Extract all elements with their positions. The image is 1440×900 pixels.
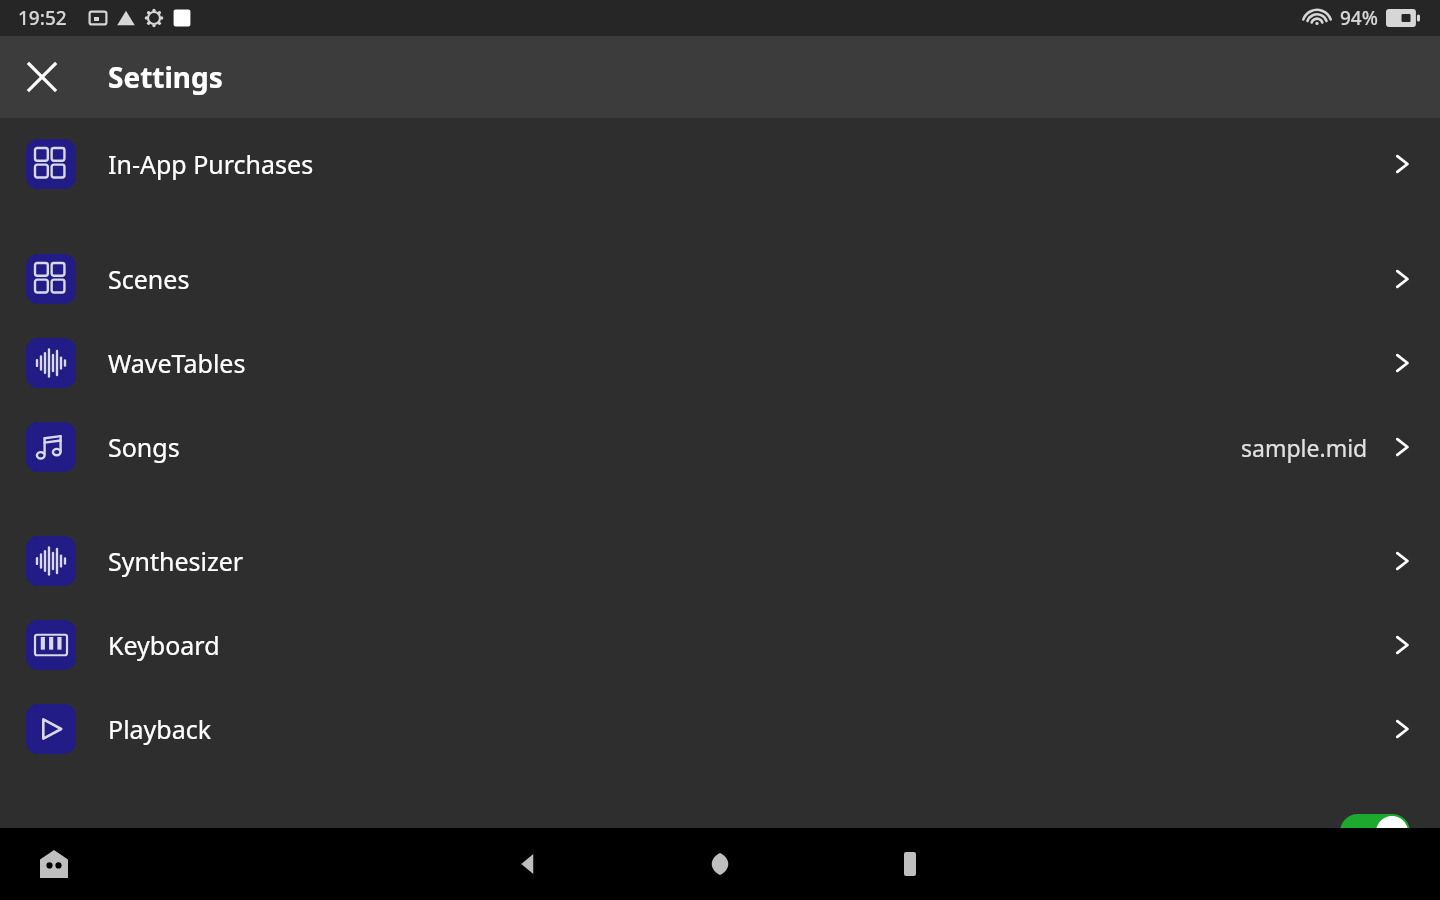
staticText: Playback: [108, 712, 212, 746]
staticText: Settings: [108, 58, 223, 96]
button[interactable]: Close: [12, 47, 72, 107]
button[interactable]: Back: [496, 832, 560, 896]
staticText: sample.mid: [1241, 432, 1368, 463]
button[interactable]: Songs: [0, 405, 1440, 489]
staticText: 19:52: [18, 5, 67, 31]
staticText: In-App Purchases: [108, 147, 314, 181]
staticText: Synthesizer: [108, 544, 244, 578]
staticText: Songs: [108, 430, 180, 464]
button[interactable]: Recent apps: [878, 832, 942, 896]
staticText: 94%: [1340, 5, 1378, 31]
staticText: Scenes: [108, 262, 190, 296]
button[interactable]: WaveTables: [0, 321, 1440, 405]
button[interactable]: Synthesizer: [0, 519, 1440, 603]
button[interactable]: Keyboard: [0, 603, 1440, 687]
button[interactable]: Toggle: [1340, 814, 1410, 850]
staticText: WaveTables: [108, 346, 246, 380]
button[interactable]: In-App Purchases: [0, 122, 1440, 206]
button[interactable]: Scenes: [0, 237, 1440, 321]
button[interactable]: Input method: [30, 840, 78, 888]
staticText: Keyboard: [108, 628, 220, 662]
button[interactable]: Home: [688, 832, 752, 896]
button[interactable]: Playback: [0, 687, 1440, 771]
